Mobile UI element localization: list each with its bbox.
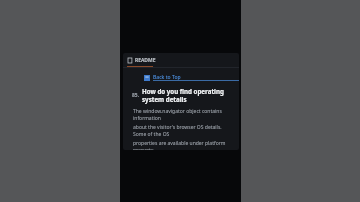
staticText: The window.navigator object contains inf…	[133, 108, 233, 122]
staticText: properties are available under platform …	[133, 140, 233, 150]
staticText: README	[135, 57, 156, 64]
staticText: about the visitor's browser OS details. …	[133, 124, 233, 138]
staticText: How do you find operating system details	[142, 87, 235, 103]
staticText: Back to Top	[153, 74, 181, 81]
button[interactable]: README	[123, 53, 156, 66]
staticText: 85.	[132, 92, 140, 99]
button[interactable]: Back to Top	[144, 73, 239, 82]
